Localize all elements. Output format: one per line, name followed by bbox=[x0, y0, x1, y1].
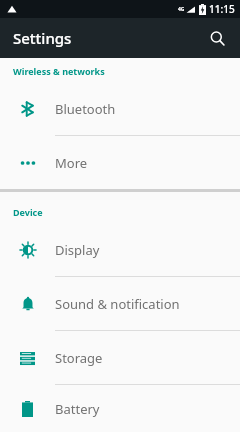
staticText: Device bbox=[13, 206, 43, 218]
staticText: Sound & notification bbox=[55, 295, 180, 313]
button[interactable]: Bluetooth bbox=[0, 82, 240, 136]
staticText: More bbox=[55, 154, 88, 172]
staticText: Storage bbox=[55, 349, 103, 367]
button[interactable]: Battery bbox=[0, 385, 240, 432]
staticText: Wireless & networks bbox=[13, 65, 105, 77]
staticText: 11:15 bbox=[209, 2, 235, 16]
staticText: Bluetooth bbox=[55, 100, 116, 118]
staticText: 4G bbox=[178, 6, 185, 13]
staticText: Settings bbox=[13, 28, 72, 48]
button[interactable]: Sound & notification bbox=[0, 277, 240, 331]
button[interactable]: Storage bbox=[0, 331, 240, 385]
staticText: Display bbox=[55, 241, 100, 259]
button[interactable]: Search bbox=[203, 24, 231, 52]
button[interactable]: More bbox=[0, 136, 240, 189]
staticText: Battery bbox=[55, 400, 100, 418]
button[interactable]: Display bbox=[0, 223, 240, 277]
